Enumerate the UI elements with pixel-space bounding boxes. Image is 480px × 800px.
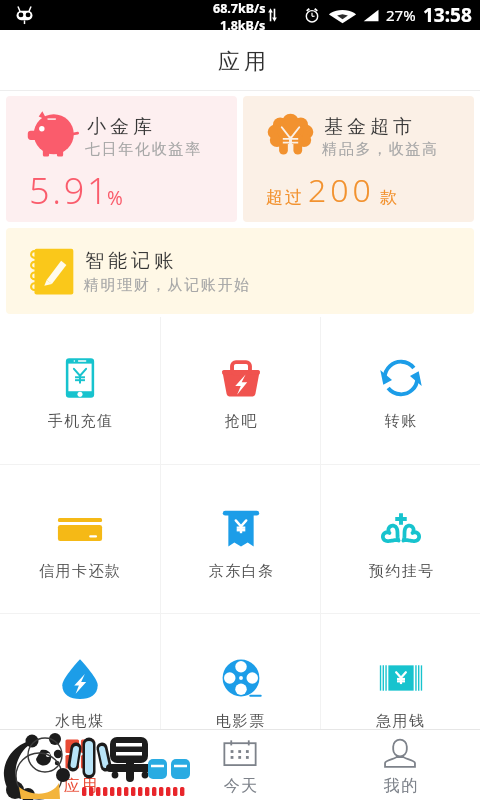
staticText: 200: [308, 168, 375, 212]
staticText: 急用钱: [376, 712, 426, 729]
button[interactable]: 急用钱: [321, 614, 480, 729]
button[interactable]: 抢吧: [161, 317, 320, 464]
button[interactable]: 今天: [160, 730, 320, 800]
staticText: 手机充值: [47, 412, 113, 431]
staticText: 今天: [223, 776, 258, 796]
staticText: 京东白条: [208, 562, 274, 581]
staticText: 水电煤: [55, 712, 105, 729]
staticText: 电影票: [216, 712, 266, 729]
staticText: 我的: [383, 776, 418, 796]
button[interactable]: 京东白条: [161, 465, 320, 613]
staticText: 转账: [384, 412, 417, 431]
button[interactable]: 手机充值: [0, 317, 160, 464]
button[interactable]: 预约挂号: [321, 465, 480, 613]
staticText: 抢吧: [224, 412, 257, 431]
staticText: 精品多，收益高: [322, 140, 439, 159]
staticText: 小金库: [85, 115, 154, 139]
staticText: 预约挂号: [368, 562, 434, 581]
button[interactable]: 水电煤: [0, 614, 160, 729]
button[interactable]: 应用: [0, 730, 160, 800]
staticText: 超过: [265, 187, 303, 208]
staticText: 5.91: [29, 166, 111, 215]
staticText: 68.7kB/s: [213, 0, 266, 17]
staticText: 应用: [216, 48, 268, 76]
button[interactable]: 转账: [321, 317, 480, 464]
staticText: 1.8kB/s: [220, 17, 266, 30]
staticText: 应用: [63, 776, 98, 796]
button[interactable]: 我的: [320, 730, 480, 800]
staticText: 精明理财，从记账开始: [83, 276, 250, 295]
button[interactable]: 智能记账: [6, 228, 474, 314]
staticText: %: [107, 185, 123, 211]
button[interactable]: 小金库: [6, 96, 237, 222]
staticText: 信用卡还款: [39, 562, 122, 581]
button[interactable]: 电影票: [161, 614, 320, 729]
staticText: 27%: [386, 5, 416, 25]
staticText: 款: [380, 187, 397, 208]
staticText: 七日年化收益率: [85, 140, 202, 159]
staticText: 基金超市: [322, 115, 414, 139]
button[interactable]: 信用卡还款: [0, 465, 160, 613]
staticText: 智能记账: [83, 249, 175, 273]
staticText: 13:58: [423, 2, 472, 28]
button[interactable]: 基金超市: [243, 96, 474, 222]
